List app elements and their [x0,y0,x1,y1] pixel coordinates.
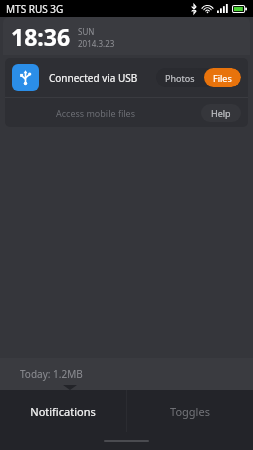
button[interactable]: Help [201,104,241,122]
staticText: Files [213,72,232,84]
button[interactable]: Notifications [0,390,126,432]
button[interactable]: Access mobile files [5,98,248,127]
staticText: Toggles [170,404,210,419]
staticText: MTS RUS 3G [6,2,64,16]
staticText: Connected via USB [49,71,138,85]
staticText: Photos [165,72,195,84]
button[interactable]: Toggles [127,390,253,432]
staticText: Today: 1.2MB [20,367,83,381]
staticText: Access mobile files [56,107,136,119]
staticText: Notifications [30,404,96,419]
button[interactable]: Photos [156,68,204,87]
button[interactable]: USB [5,58,248,97]
staticText: 18:36 [11,21,71,52]
button[interactable]: Files [204,68,241,87]
staticText: 2014.3.23 [78,38,115,49]
staticText: Help [211,107,231,119]
staticText: SUN [78,26,95,37]
other: USB [12,64,39,91]
